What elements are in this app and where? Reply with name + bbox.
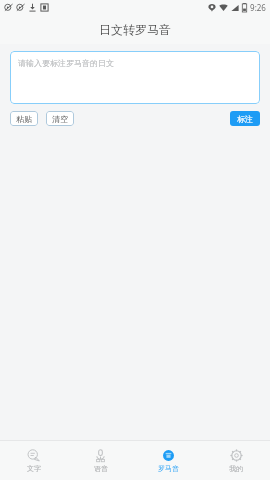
button[interactable]: 文字 xyxy=(0,441,67,480)
button[interactable]: 请输入要标注罗马音的日文 xyxy=(10,51,260,104)
staticText: 我的 xyxy=(229,464,243,473)
button[interactable]: 罗马音 xyxy=(134,441,202,480)
staticText: 日文转罗马音 xyxy=(99,22,171,37)
staticText: 文字 xyxy=(27,464,41,473)
staticText: 标注 xyxy=(237,114,253,124)
staticText: 粘贴 xyxy=(16,114,32,124)
staticText: 罗马音 xyxy=(158,464,179,473)
button[interactable]: 粘贴 xyxy=(10,111,38,126)
staticText: 语音 xyxy=(94,464,108,473)
button[interactable]: 我的 xyxy=(202,441,270,480)
button[interactable]: 清空 xyxy=(46,111,74,126)
button[interactable]: 语音 xyxy=(67,441,134,480)
staticText: 请输入要标注罗马音的日文 xyxy=(18,58,114,68)
staticText: 清空 xyxy=(52,114,68,124)
staticText: 9:26 xyxy=(250,2,266,13)
button[interactable]: 标注 xyxy=(230,111,260,126)
